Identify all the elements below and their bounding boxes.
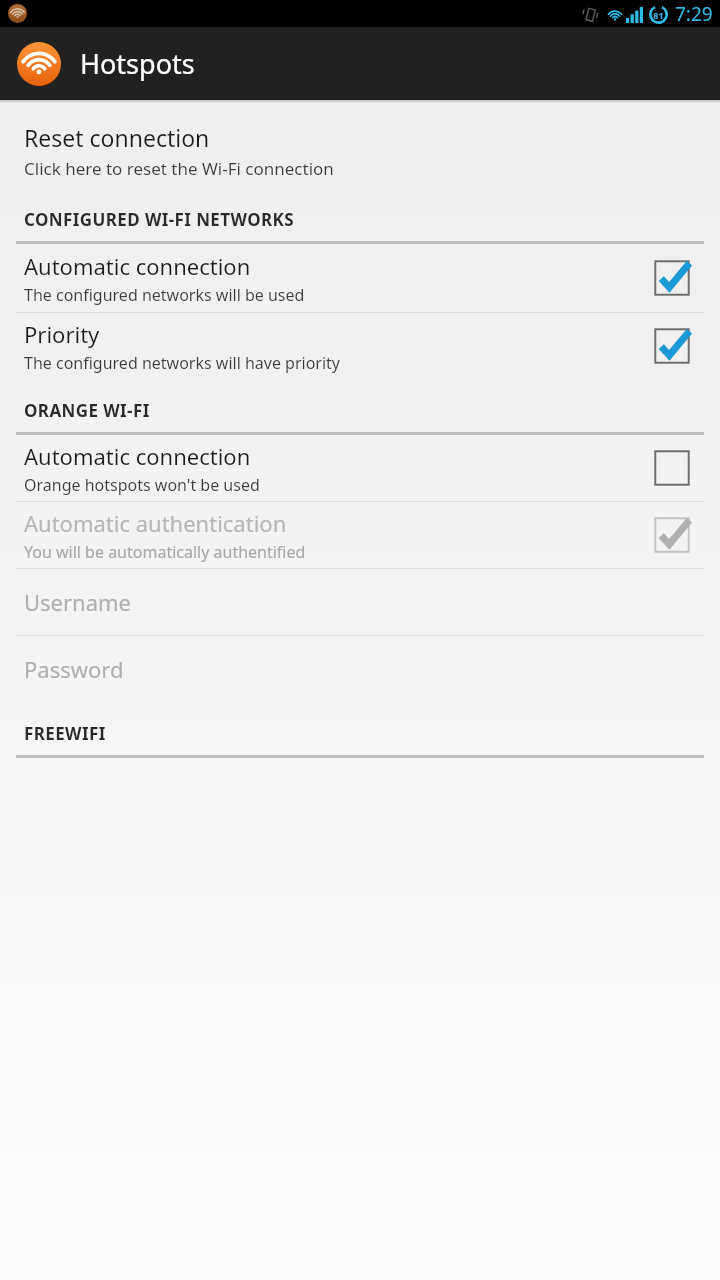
button[interactable]: Automatic connection	[0, 435, 720, 501]
staticText: Orange hotspots won't be used	[24, 474, 260, 496]
staticText: 7:29	[675, 1, 713, 27]
button[interactable]: Hotspots app icon	[16, 41, 62, 87]
staticText: Automatic connection	[24, 441, 251, 471]
staticText: Password	[24, 654, 124, 684]
button[interactable]: Username	[0, 569, 720, 635]
staticText: ORANGE WI-FI	[24, 399, 150, 422]
staticText: Reset connection	[24, 122, 210, 153]
staticText: The configured networks will have priori…	[24, 352, 341, 374]
staticText: Priority	[24, 319, 100, 349]
button[interactable]: Reset connection	[0, 116, 720, 188]
staticText: Automatic authentication	[24, 508, 287, 538]
button[interactable]: Automatic authentication	[0, 502, 720, 568]
staticText: Click here to reset the Wi-Fi connection	[24, 157, 334, 180]
staticText: FREEWIFI	[24, 722, 106, 745]
button[interactable]: Password	[0, 636, 720, 702]
staticText: Hotspots	[80, 45, 195, 82]
staticText: 81	[653, 9, 664, 21]
button[interactable]: Automatic connection	[0, 244, 720, 312]
staticText: Automatic connection	[24, 251, 251, 281]
staticText: The configured networks will be used	[24, 284, 305, 306]
button[interactable]: Priority	[0, 313, 720, 379]
staticText: Username	[24, 587, 132, 617]
staticText: CONFIGURED WI-FI NETWORKS	[24, 208, 295, 231]
staticText: You will be automatically authentified	[24, 541, 306, 563]
